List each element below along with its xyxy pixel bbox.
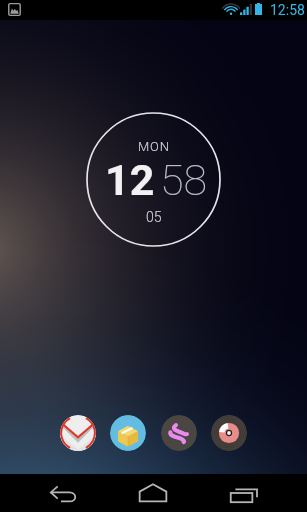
button[interactable]: Swish [161,415,197,451]
staticText: 58 [160,155,208,205]
staticText: MON [138,139,170,154]
staticText: 12:58 [270,2,305,18]
button[interactable]: Package [110,415,146,451]
button[interactable]: MON [86,112,221,247]
button[interactable]: Music [211,415,247,451]
button[interactable]: Back [32,476,96,512]
staticText: 05 [146,209,162,225]
staticText: 12 [105,155,155,205]
button[interactable]: Gmail [60,415,96,451]
button[interactable]: Recents [213,475,277,512]
button[interactable]: Home [121,474,185,512]
